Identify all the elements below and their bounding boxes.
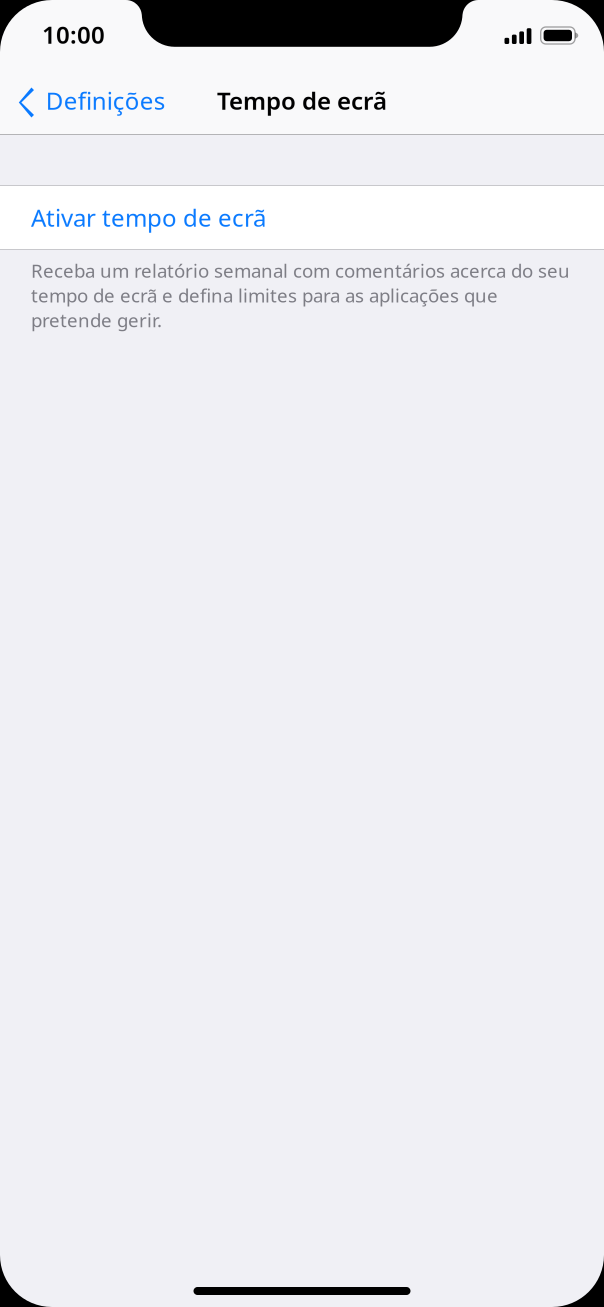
staticText: Definições <box>46 85 165 116</box>
button[interactable]: Definições <box>0 66 175 134</box>
staticText: 10:00 <box>42 19 105 50</box>
staticText: Ativar tempo de ecrã <box>31 202 266 233</box>
button[interactable]: Ativar tempo de ecrã <box>0 186 604 249</box>
staticText: Tempo de ecrã <box>217 85 387 116</box>
staticText: Receba um relatório semanal com comentár… <box>31 258 570 332</box>
